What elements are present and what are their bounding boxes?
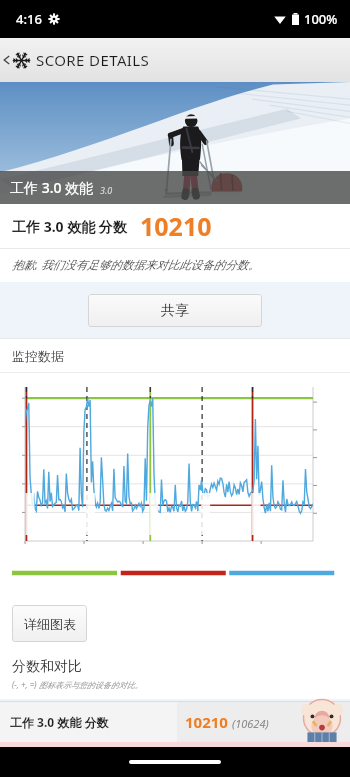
staticText: 分数和对比 <box>12 658 82 676</box>
staticText: 100% <box>304 10 338 28</box>
button[interactable]: 工作 3.0 效能 分数 <box>0 702 350 742</box>
staticText: 工作 3.0 效能 分数 <box>10 714 109 730</box>
staticText: (10624) <box>232 716 269 731</box>
button[interactable]: 共享 <box>88 294 262 327</box>
button[interactable]: Back <box>0 38 350 82</box>
staticText: 抱歉, 我们没有足够的数据来对比此设备的分数。 <box>12 257 260 273</box>
staticText: 共享 <box>161 302 189 320</box>
staticText: 监控数据 <box>12 348 64 364</box>
staticText: 10210 <box>185 712 228 732</box>
staticText: 4:16 <box>16 10 42 28</box>
staticText: 详细图表 <box>24 616 76 632</box>
staticText: 10210 <box>140 209 212 243</box>
staticText: SCORE DETAILS <box>36 50 150 70</box>
button[interactable]: 详细图表 <box>12 605 87 642</box>
staticText: (-, +, =) 图标表示与您的设备的对比。 <box>12 679 143 690</box>
staticText: 3.0 <box>100 184 113 196</box>
staticText: 工作 3.0 效能 <box>10 178 94 197</box>
staticText: 工作 3.0 效能 分数 <box>12 217 127 236</box>
